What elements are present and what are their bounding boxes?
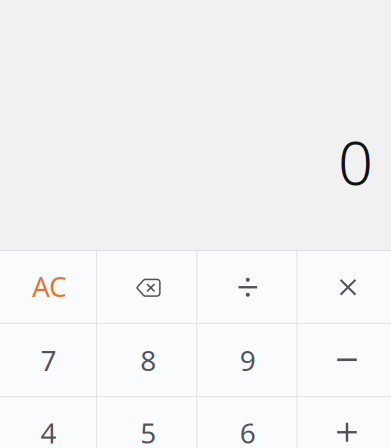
staticText: AC xyxy=(32,268,67,305)
button[interactable]: Minus xyxy=(297,323,391,396)
button[interactable]: Multiply xyxy=(297,251,391,323)
button[interactable]: Divide xyxy=(197,251,297,323)
button[interactable]: 4 xyxy=(0,396,96,448)
button[interactable]: Plus xyxy=(297,396,391,448)
staticText: 5 xyxy=(140,414,156,448)
staticText: 9 xyxy=(240,342,256,379)
staticText: 0 xyxy=(338,121,373,202)
button[interactable]: 6 xyxy=(197,396,297,448)
staticText: 6 xyxy=(240,414,256,448)
button[interactable]: AC xyxy=(0,251,96,323)
button[interactable]: 5 xyxy=(96,396,197,448)
button[interactable]: Delete xyxy=(96,251,197,323)
staticText: 7 xyxy=(41,342,57,379)
button[interactable]: 7 xyxy=(0,323,96,396)
staticText: 4 xyxy=(41,414,57,448)
button[interactable]: 9 xyxy=(197,323,297,396)
button[interactable]: 8 xyxy=(96,323,197,396)
staticText: 8 xyxy=(140,342,156,379)
